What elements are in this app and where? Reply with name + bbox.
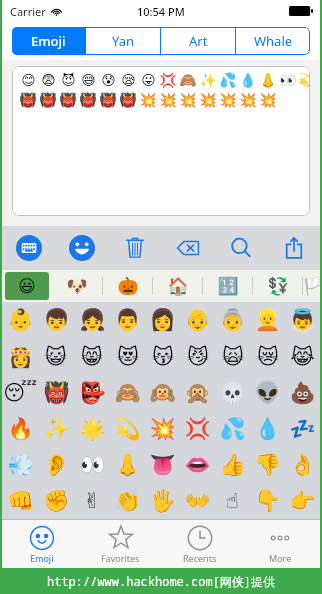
button[interactable]: 👺 xyxy=(74,375,110,411)
button[interactable]: 😿 xyxy=(250,339,285,375)
button[interactable]: 💧 xyxy=(250,411,285,447)
button[interactable]: 👵 xyxy=(215,302,250,339)
staticText: 👹 xyxy=(99,92,117,108)
button[interactable]: 👐 xyxy=(180,483,215,519)
button[interactable]: 👧 xyxy=(74,302,110,339)
button[interactable]: Emoji xyxy=(12,27,85,55)
button[interactable]: 😹 xyxy=(285,339,320,375)
button[interactable]: Keyboard xyxy=(2,226,55,270)
button[interactable]: 👽 xyxy=(250,375,285,411)
button[interactable]: 👱 xyxy=(250,302,285,339)
staticText: 💫 xyxy=(114,417,141,442)
button[interactable]: 👃 xyxy=(110,447,145,483)
button[interactable]: Places xyxy=(153,272,202,300)
button[interactable]: 👎 xyxy=(250,447,285,483)
button[interactable]: ✌ xyxy=(74,483,110,519)
button[interactable]: 👴 xyxy=(180,302,215,339)
button[interactable]: 😊 xyxy=(12,66,310,216)
button[interactable]: Yan xyxy=(86,27,160,55)
button[interactable]: 😽 xyxy=(145,339,180,375)
button[interactable]: 😸 xyxy=(74,339,110,375)
button[interactable]: Recents xyxy=(160,520,240,568)
button[interactable]: 😺 xyxy=(38,339,74,375)
button[interactable]: 💦 xyxy=(215,411,250,447)
button[interactable]: 💥 xyxy=(145,411,180,447)
button[interactable]: Share xyxy=(267,226,320,270)
button[interactable]: Smileys xyxy=(5,272,49,300)
button[interactable]: Emoji xyxy=(2,520,81,568)
button[interactable]: 👍 xyxy=(215,447,250,483)
staticText: 😸 xyxy=(81,345,103,369)
button[interactable]: 👨 xyxy=(110,302,145,339)
button[interactable]: More xyxy=(240,520,320,568)
staticText: 🌟 xyxy=(79,417,106,442)
button[interactable]: Favorites xyxy=(81,520,160,568)
staticText: 👧 xyxy=(79,308,106,333)
button[interactable]: Whale xyxy=(236,27,310,55)
button[interactable]: 💀 xyxy=(215,375,250,411)
button[interactable]: Backspace xyxy=(161,226,214,270)
button[interactable]: 👏 xyxy=(110,483,145,519)
staticText: 👽 xyxy=(254,381,281,406)
button[interactable]: ✊ xyxy=(38,483,74,519)
staticText: 🐶 xyxy=(66,276,88,296)
staticText: 🙉 xyxy=(149,381,176,406)
button[interactable]: 👹 xyxy=(38,375,74,411)
staticText: 😊 xyxy=(21,72,36,88)
button[interactable]: 👇 xyxy=(250,483,285,519)
staticText: 💢 xyxy=(159,72,177,88)
button[interactable]: ✨ xyxy=(38,411,74,447)
button[interactable]: 🌟 xyxy=(74,411,110,447)
staticText: 💥 xyxy=(159,92,177,108)
button[interactable]: 🔥 xyxy=(2,411,38,447)
staticText: Yan xyxy=(112,32,135,50)
button[interactable]: 🙈 xyxy=(110,375,145,411)
button[interactable]: 😴 xyxy=(2,375,38,411)
button[interactable]: Animals xyxy=(52,272,102,300)
staticText: Whale xyxy=(254,32,293,50)
button[interactable]: 💨 xyxy=(2,447,38,483)
staticText: 👹 xyxy=(79,92,97,108)
button[interactable]: 🙉 xyxy=(145,375,180,411)
button[interactable]: 😻 xyxy=(110,339,145,375)
button[interactable]: 👌 xyxy=(285,447,320,483)
button[interactable]: 👶 xyxy=(2,302,38,339)
button[interactable]: Art xyxy=(161,27,235,55)
button[interactable]: 🙊 xyxy=(180,375,215,411)
button[interactable]: 👉 xyxy=(285,483,320,519)
button[interactable]: Flags xyxy=(303,272,320,300)
staticText: 👹 xyxy=(59,92,77,108)
button[interactable]: 👦 xyxy=(38,302,74,339)
button[interactable]: 💤 xyxy=(285,411,320,447)
button[interactable]: ☝ xyxy=(215,483,250,519)
button[interactable]: 👄 xyxy=(180,447,215,483)
button[interactable]: Emoji keyboard xyxy=(55,226,108,270)
button[interactable]: 👂 xyxy=(38,447,74,483)
button[interactable]: 👼 xyxy=(285,302,320,339)
button[interactable]: 👅 xyxy=(145,447,180,483)
button[interactable]: Search xyxy=(214,226,267,270)
staticText: 🙀 xyxy=(222,345,244,369)
staticText: 👊 xyxy=(7,489,34,514)
button[interactable]: 👊 xyxy=(2,483,38,519)
button[interactable]: 👸 xyxy=(2,339,38,375)
button[interactable]: Symbols xyxy=(253,272,302,300)
staticText: http://www.hackhome.com[网侠]提供 xyxy=(47,573,276,589)
button[interactable]: 🖐 xyxy=(145,483,180,519)
button[interactable]: Numbers xyxy=(203,272,252,300)
button[interactable]: Delete all xyxy=(108,226,161,270)
staticText: 🏳 xyxy=(303,276,320,296)
button[interactable]: 👀 xyxy=(74,447,110,483)
button[interactable]: 💫 xyxy=(110,411,145,447)
button[interactable]: 🙀 xyxy=(215,339,250,375)
button[interactable]: 💢 xyxy=(180,411,215,447)
staticText: 💥 xyxy=(179,92,197,108)
staticText: 💤 xyxy=(289,417,316,442)
staticText: 🙊 xyxy=(184,381,211,406)
button[interactable]: 👩 xyxy=(145,302,180,339)
staticText: 10:54 PM xyxy=(137,4,185,19)
button[interactable]: 😼 xyxy=(180,339,215,375)
button[interactable]: 💩 xyxy=(285,375,320,411)
button[interactable]: Objects xyxy=(103,272,152,300)
staticText: 👦 xyxy=(43,308,70,333)
